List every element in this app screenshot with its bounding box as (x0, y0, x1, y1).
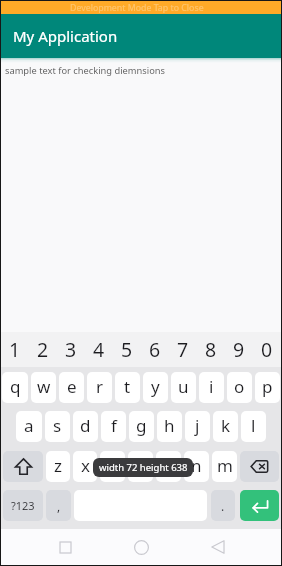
staticText: q (10, 375, 21, 398)
button[interactable]: n (184, 451, 209, 482)
staticText: sample text for checking diemnsions (5, 64, 165, 77)
staticText: My Application (13, 26, 118, 46)
staticText: g (136, 414, 147, 437)
button[interactable]: 8 (197, 332, 225, 367)
button[interactable]: k (213, 411, 238, 442)
button[interactable]: f (101, 411, 126, 442)
button[interactable]: 3 (57, 332, 85, 367)
button[interactable]: l (241, 411, 266, 442)
staticText: b (163, 454, 174, 477)
button[interactable]: y (143, 372, 168, 403)
button[interactable]: 5 (113, 332, 141, 367)
button[interactable]: Home (124, 530, 158, 564)
button[interactable]: b (156, 451, 181, 482)
button[interactable]: h (157, 411, 182, 442)
staticText: c (108, 454, 117, 477)
staticText: t (124, 375, 131, 398)
button[interactable]: z (46, 451, 70, 482)
staticText: l (251, 414, 256, 437)
staticText: m (217, 454, 233, 477)
staticText: 0 (261, 336, 273, 363)
button[interactable]: r (87, 372, 112, 403)
button[interactable]: 0 (253, 332, 281, 367)
staticText: 9 (233, 336, 245, 363)
staticText: z (54, 454, 62, 477)
button[interactable]: a (16, 411, 42, 442)
button[interactable]: g (129, 411, 154, 442)
staticText: , (57, 498, 61, 514)
staticText: y (151, 375, 160, 398)
staticText: j (195, 414, 200, 437)
button[interactable]: s (45, 411, 70, 442)
staticText: i (209, 375, 214, 398)
button[interactable]: Recents (48, 530, 82, 564)
staticText: 2 (37, 336, 49, 363)
staticText: 7 (177, 336, 189, 363)
button[interactable]: q (2, 372, 28, 403)
staticText: v (136, 454, 145, 477)
staticText: Development Mode Tap to Close (70, 2, 204, 14)
button[interactable]: e (59, 372, 84, 403)
staticText: f (111, 414, 117, 437)
staticText: p (262, 375, 273, 398)
staticText: w (37, 375, 51, 398)
button[interactable]: u (171, 372, 196, 403)
button[interactable]: Backspace (240, 451, 279, 482)
button[interactable]: ?123 (3, 490, 43, 521)
staticText: a (24, 414, 34, 437)
button[interactable]: v (128, 451, 153, 482)
staticText: d (80, 414, 91, 437)
staticText: x (81, 454, 90, 477)
button[interactable]: . (211, 490, 235, 521)
staticText: n (191, 454, 202, 477)
button[interactable]: m (212, 451, 237, 482)
button[interactable]: 6 (141, 332, 169, 367)
button[interactable]: Development Mode Tap to Close (1, 1, 281, 14)
button[interactable]: w (31, 372, 56, 403)
button[interactable]: x (73, 451, 97, 482)
staticText: r (96, 375, 104, 398)
button[interactable]: t (115, 372, 140, 403)
staticText: k (221, 414, 231, 437)
staticText: 6 (149, 336, 161, 363)
button[interactable]: Enter (240, 490, 279, 521)
staticText: 5 (121, 336, 133, 363)
staticText: 8 (205, 336, 217, 363)
staticText: 1 (9, 336, 21, 363)
staticText: h (164, 414, 175, 437)
button[interactable]: Back (201, 530, 235, 564)
button[interactable]: i (199, 372, 224, 403)
button[interactable]: d (73, 411, 98, 442)
button[interactable]: 2 (29, 332, 57, 367)
staticText: . (221, 498, 225, 514)
button[interactable]: p (255, 372, 280, 403)
staticText: u (178, 375, 189, 398)
button[interactable]: Shift (3, 451, 43, 482)
staticText: width 72 height 638 (99, 461, 188, 474)
staticText: 4 (93, 336, 105, 363)
staticText: 3 (65, 336, 77, 363)
button[interactable]: o (227, 372, 252, 403)
staticText: o (234, 375, 245, 398)
button[interactable]: 4 (85, 332, 113, 367)
button[interactable]: , (46, 490, 71, 521)
button[interactable]: c (100, 451, 125, 482)
staticText: ?123 (11, 498, 35, 513)
button[interactable]: 1 (1, 332, 29, 367)
button[interactable]: 9 (225, 332, 253, 367)
staticText: e (67, 375, 77, 398)
button[interactable]: j (185, 411, 210, 442)
button[interactable]: 7 (169, 332, 197, 367)
staticText: s (53, 414, 62, 437)
